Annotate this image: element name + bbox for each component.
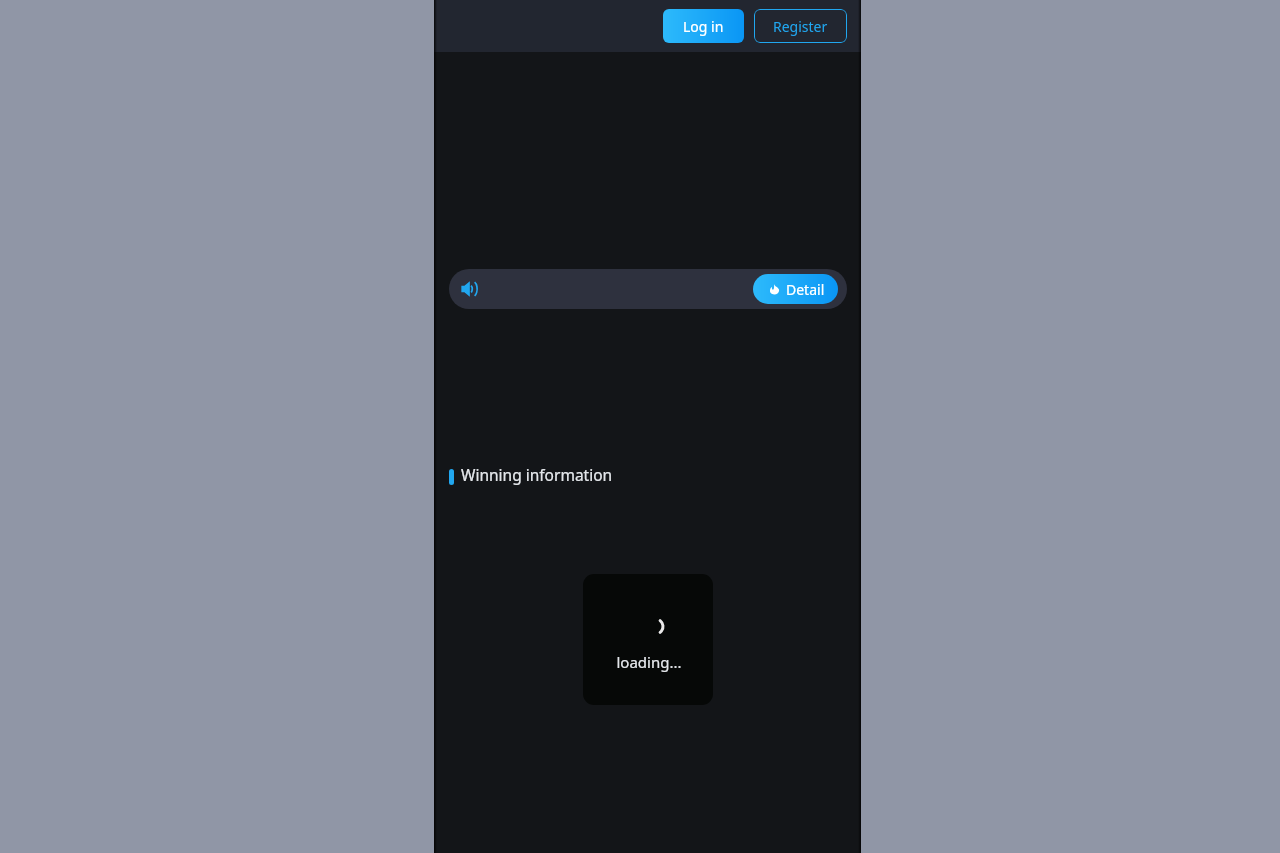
button[interactable]: Log in [663, 9, 744, 43]
staticText: Winning information [461, 464, 613, 485]
button[interactable]: Sound [455, 274, 484, 304]
staticText: Log in [683, 17, 724, 36]
button[interactable]: Detail [753, 274, 838, 304]
button[interactable]: Register [754, 9, 847, 43]
staticText: Register [773, 17, 828, 36]
staticText: loading... [616, 652, 682, 672]
staticText: Detail [786, 280, 825, 299]
